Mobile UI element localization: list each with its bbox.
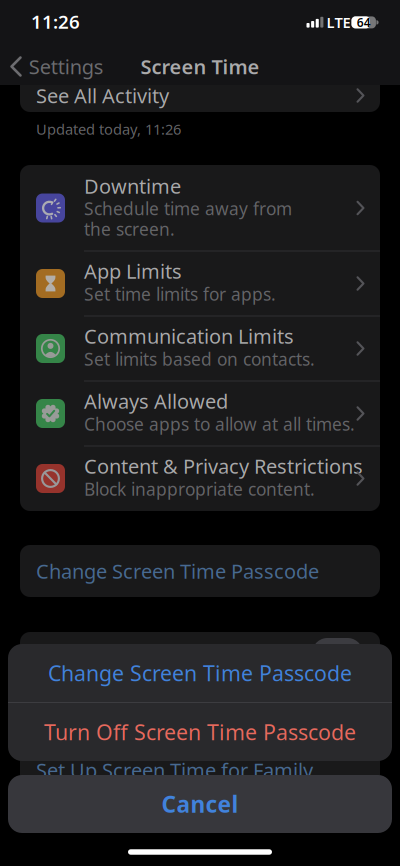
staticText: Turn Off Screen Time Passcode (44, 718, 356, 746)
staticText: Set limits based on contacts. (84, 347, 315, 370)
staticText: 11:26 (31, 9, 80, 34)
staticText: Change Screen Time Passcode (48, 659, 352, 687)
staticText: the screen. (84, 217, 175, 240)
button[interactable]: Cancel (8, 775, 392, 833)
staticText: Set time limits for apps. (84, 282, 276, 305)
button[interactable]: Turn Off Screen Time Passcode (8, 703, 392, 761)
staticText: Cancel (161, 789, 238, 819)
staticText: See All Activity (36, 82, 169, 109)
button[interactable]: Change Screen Time Passcode (20, 545, 380, 597)
staticText: Change Screen Time Passcode (36, 558, 319, 584)
staticText: Schedule time away from (84, 197, 292, 220)
button[interactable]: App Limits (20, 251, 380, 316)
staticText: Downtime (84, 173, 181, 199)
button[interactable]: Downtime (20, 165, 380, 251)
button[interactable]: Always Allowed (20, 381, 380, 446)
button[interactable]: Communication Limits (20, 316, 380, 381)
staticText: 64 (357, 14, 371, 30)
staticText: LTE (326, 13, 350, 32)
staticText: Updated today, 11:26 (36, 119, 181, 139)
button[interactable]: Share Across Devices (312, 638, 363, 669)
button[interactable]: Set Up Screen Time for Family (20, 740, 380, 792)
button[interactable]: Change Screen Time Passcode (8, 644, 392, 702)
staticText: Always Allowed (84, 388, 228, 414)
button[interactable]: Content & Privacy Restrictions (20, 446, 380, 511)
button[interactable]: See All Activity (20, 52, 380, 112)
staticText: App Limits (84, 258, 182, 284)
staticText: Choose apps to allow at all times. (84, 412, 355, 435)
staticText: Settings (29, 53, 104, 80)
staticText: Block inappropriate content. (84, 477, 315, 500)
staticText: Screen Time (140, 53, 259, 80)
staticText: Communication Limits (84, 323, 294, 349)
staticText: Content & Privacy Restrictions (84, 453, 363, 479)
button[interactable]: Back (10, 53, 104, 80)
staticText: Set Up Screen Time for Family (36, 757, 313, 783)
